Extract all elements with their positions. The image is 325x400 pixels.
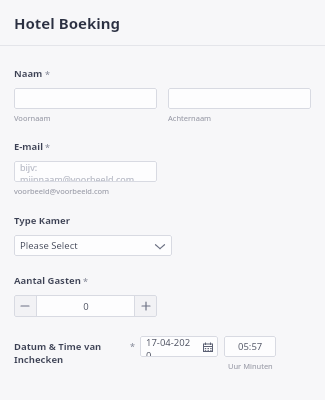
button[interactable]: 05:57 (224, 336, 276, 357)
staticText: Inchecken (14, 353, 64, 366)
staticText: bijv: mijnnaam@voorbeeld.com (20, 161, 151, 182)
staticText: Hotel Boeking (14, 13, 121, 33)
button[interactable]: Increase guests (135, 295, 157, 317)
staticText: Uur Minuten (228, 361, 273, 371)
staticText: voorbeeld@voorbeeld.com (14, 186, 110, 196)
staticText: 0 (83, 300, 89, 313)
other: Open room type dropdown (152, 238, 168, 254)
button[interactable] (168, 88, 311, 109)
staticText: Please Select (20, 239, 78, 252)
staticText: * (130, 340, 135, 352)
button[interactable]: bijv: mijnnaam@voorbeeld.com (14, 161, 157, 182)
staticText: Voornaam (14, 113, 51, 123)
staticText: Naam (14, 67, 43, 80)
staticText: Datum & Time van (14, 340, 102, 353)
button[interactable]: Please Select (14, 235, 172, 256)
staticText: Aantal Gasten (14, 274, 81, 287)
staticText: E-mail (14, 140, 43, 153)
staticText: * (45, 141, 50, 153)
staticText: Type Kamer (14, 214, 71, 227)
staticText: 05:57 (238, 340, 263, 353)
staticText: Achternaam (168, 113, 212, 123)
staticText: * (45, 68, 50, 80)
other: Pick date (200, 339, 216, 355)
button[interactable]: Decrease guests (14, 295, 36, 317)
button[interactable] (14, 88, 157, 109)
staticText: 17-04-2020 (146, 336, 194, 357)
button[interactable]: 17-04-2020 (140, 336, 218, 357)
staticText: * (83, 275, 88, 287)
